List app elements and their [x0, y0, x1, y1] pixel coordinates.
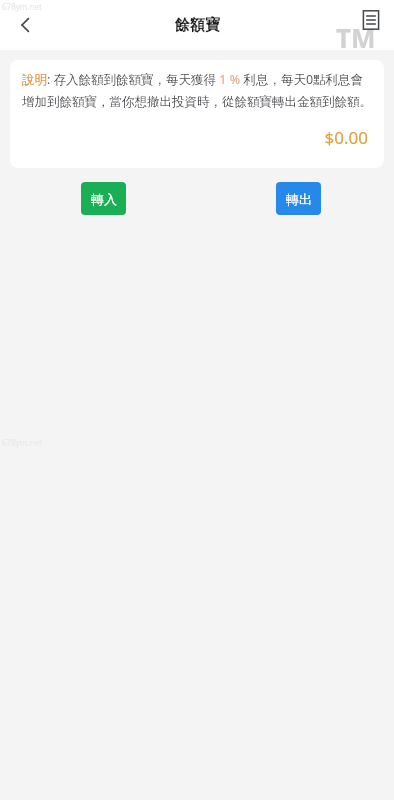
button[interactable]: 轉入 [81, 182, 126, 215]
staticText: 說明: 存入餘額到餘額寶，每天獲得 1 % 利息，每天0點利息會增加到餘額寶，當… [22, 71, 372, 110]
staticText: $0.00 [22, 126, 368, 149]
button[interactable]: Back [6, 5, 46, 45]
staticText: 678ym.net [2, 437, 42, 448]
button[interactable]: Records [358, 7, 384, 33]
staticText: 餘額寶 [175, 16, 220, 35]
staticText: 678ym.net [2, 1, 42, 12]
staticText: 轉出 [286, 191, 312, 207]
staticText: TM [336, 20, 376, 50]
button[interactable]: 轉出 [276, 182, 321, 215]
staticText: 轉入 [91, 191, 117, 207]
